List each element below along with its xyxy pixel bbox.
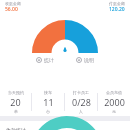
staticText: 元	[112, 109, 116, 114]
staticText: 人	[79, 109, 83, 114]
staticText: 接车	[44, 90, 52, 95]
staticText: 11	[43, 96, 54, 108]
staticText: 统计	[44, 57, 54, 63]
staticText: 打卡员工	[73, 90, 89, 95]
staticText: 0/28	[72, 96, 91, 108]
button[interactable]: 会员充值	[98, 88, 130, 116]
staticText: 收款统计	[6, 127, 26, 130]
staticText: 20	[10, 96, 21, 108]
staticText: 2000	[104, 96, 125, 108]
staticText: 120.20	[109, 6, 125, 13]
button[interactable]: 接车	[32, 88, 64, 116]
staticText: 台	[46, 109, 50, 114]
staticText: 当天预约	[8, 90, 24, 95]
staticText: 56.00	[5, 6, 18, 13]
staticText: 付款金额	[109, 1, 125, 6]
button[interactable]: 当天预约	[0, 88, 31, 116]
staticText: 会员充值	[106, 90, 122, 95]
button[interactable]: 说明	[74, 56, 96, 64]
staticText: 单	[14, 109, 18, 114]
staticText: 收款金额	[5, 1, 21, 6]
button[interactable]: 统计	[34, 56, 56, 64]
button[interactable]: 打卡员工	[65, 88, 97, 116]
staticText: 说明	[84, 57, 94, 63]
